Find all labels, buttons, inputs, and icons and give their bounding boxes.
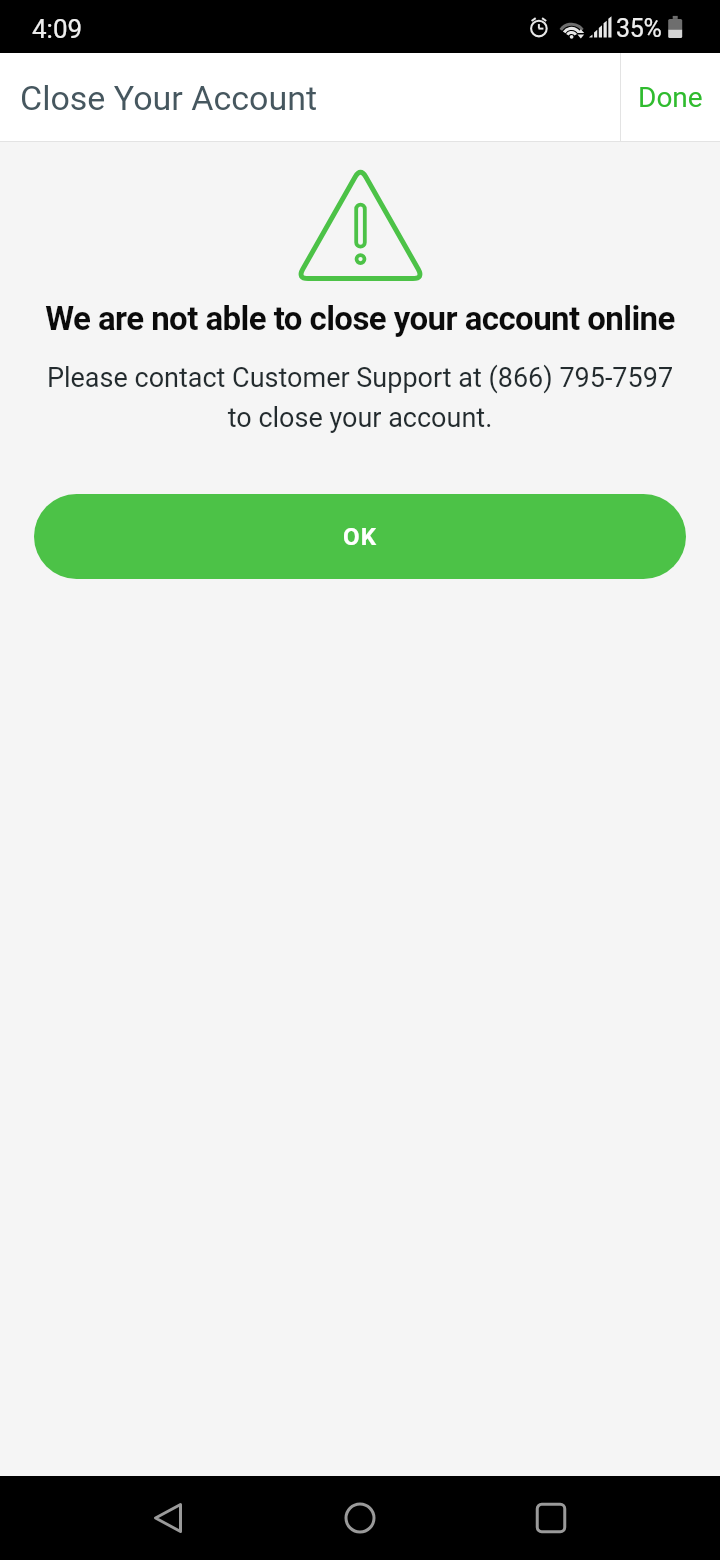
button[interactable]: Recent apps <box>509 1482 593 1554</box>
staticText: Please contact Customer Support at (866)… <box>36 362 684 433</box>
button[interactable]: Done <box>621 53 720 142</box>
staticText: 4:09 <box>32 14 83 44</box>
staticText: 35% <box>616 14 662 43</box>
button[interactable]: Home <box>318 1482 402 1554</box>
button[interactable]: Back <box>126 1482 210 1554</box>
staticText: We are not able to close your account on… <box>45 299 675 338</box>
button[interactable]: OK <box>34 494 686 579</box>
staticText: Close Your Account <box>20 78 318 118</box>
staticText: Done <box>638 81 703 114</box>
staticText: OK <box>343 523 378 551</box>
